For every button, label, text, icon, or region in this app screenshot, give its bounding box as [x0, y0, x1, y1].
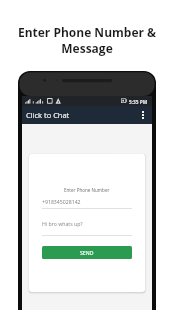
button[interactable]: More options — [138, 110, 148, 120]
staticText: Enter Phone Number & Message — [17, 24, 157, 56]
staticText: +918345028142 — [42, 198, 132, 205]
staticText: 5:35 PM — [129, 99, 148, 106]
staticText: Enter Phone Number — [64, 187, 110, 193]
staticText: Hi bro whats up? — [42, 220, 132, 227]
staticText: SEND — [80, 249, 94, 256]
staticText: Click to Chat — [26, 110, 70, 120]
button[interactable]: SEND — [42, 246, 132, 259]
